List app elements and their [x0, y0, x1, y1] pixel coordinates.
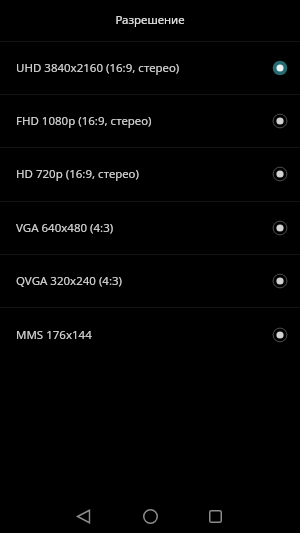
button[interactable]: QVGA 320x240 (4:3) — [0, 254, 300, 307]
button[interactable]: Back — [64, 497, 102, 533]
button[interactable]: HD 720p (16:9, стерео) — [0, 147, 300, 201]
button[interactable]: UHD 3840x2160 (16:9, стерео) — [0, 41, 300, 94]
button[interactable]: MMS 176x144 — [0, 307, 300, 363]
staticText: FHD 1080p (16:9, стерео) — [16, 113, 152, 129]
button[interactable]: VGA 640x480 (4:3) — [0, 201, 300, 254]
staticText: QVGA 320x240 (4:3) — [16, 273, 123, 289]
button[interactable]: Recents — [196, 497, 234, 533]
staticText: UHD 3840x2160 (16:9, стерео) — [16, 60, 180, 76]
staticText: Разрешение — [115, 12, 185, 28]
staticText: HD 720p (16:9, стерео) — [16, 166, 139, 182]
staticText: VGA 640x480 (4:3) — [16, 220, 114, 236]
staticText: MMS 176x144 — [16, 327, 92, 343]
button[interactable]: FHD 1080p (16:9, стерео) — [0, 94, 300, 147]
button[interactable]: Home — [131, 497, 169, 533]
